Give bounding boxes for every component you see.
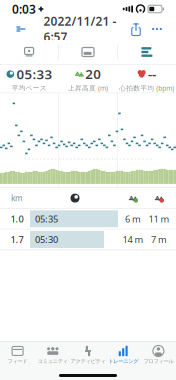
button[interactable]: More options bbox=[146, 19, 168, 39]
staticText: 心拍数平均 (bpm) bbox=[119, 84, 174, 92]
staticText: 14 m bbox=[122, 233, 143, 246]
staticText: 05:35 bbox=[35, 213, 58, 225]
staticText: 1.0 bbox=[10, 213, 23, 225]
button[interactable]: 1.7 bbox=[0, 229, 176, 250]
staticText: プロフィール bbox=[143, 358, 173, 365]
button[interactable]: Share bbox=[126, 19, 146, 39]
button[interactable]: コミュニティ bbox=[35, 342, 70, 368]
staticText: -- bbox=[148, 65, 156, 83]
staticText: 2022/11/21 - 6:57 bbox=[43, 13, 116, 45]
button[interactable]: Splits, selected bbox=[118, 40, 176, 64]
staticText: 0:03 bbox=[12, 1, 36, 17]
button[interactable]: トレーニング bbox=[106, 342, 141, 368]
button[interactable]: フィード bbox=[0, 342, 35, 368]
staticText: km bbox=[11, 193, 23, 203]
staticText: 上昇高度 (m) bbox=[68, 84, 108, 92]
button[interactable]: Photos bbox=[59, 40, 117, 64]
staticText: 平均ペース bbox=[12, 84, 47, 92]
button[interactable]: プロフィール bbox=[141, 342, 176, 368]
staticText: 05:33 bbox=[17, 65, 53, 83]
staticText: 1.7 bbox=[10, 233, 23, 246]
staticText: 05:30 bbox=[35, 233, 58, 246]
staticText: 6 m bbox=[125, 213, 141, 225]
button[interactable]: Achievements bbox=[0, 40, 58, 64]
button[interactable]: アクティビティ bbox=[70, 342, 106, 368]
staticText: アクティビティ bbox=[70, 358, 105, 365]
staticText: 11 m bbox=[148, 213, 169, 225]
staticText: フィード bbox=[8, 358, 28, 365]
button[interactable]: 1.0 bbox=[0, 209, 176, 229]
staticText: トレーニング bbox=[108, 358, 138, 365]
staticText: コミュニティ bbox=[38, 358, 68, 365]
button[interactable]: Back bbox=[8, 19, 34, 39]
staticText: 20 bbox=[85, 65, 101, 83]
staticText: 7 m bbox=[151, 233, 167, 246]
